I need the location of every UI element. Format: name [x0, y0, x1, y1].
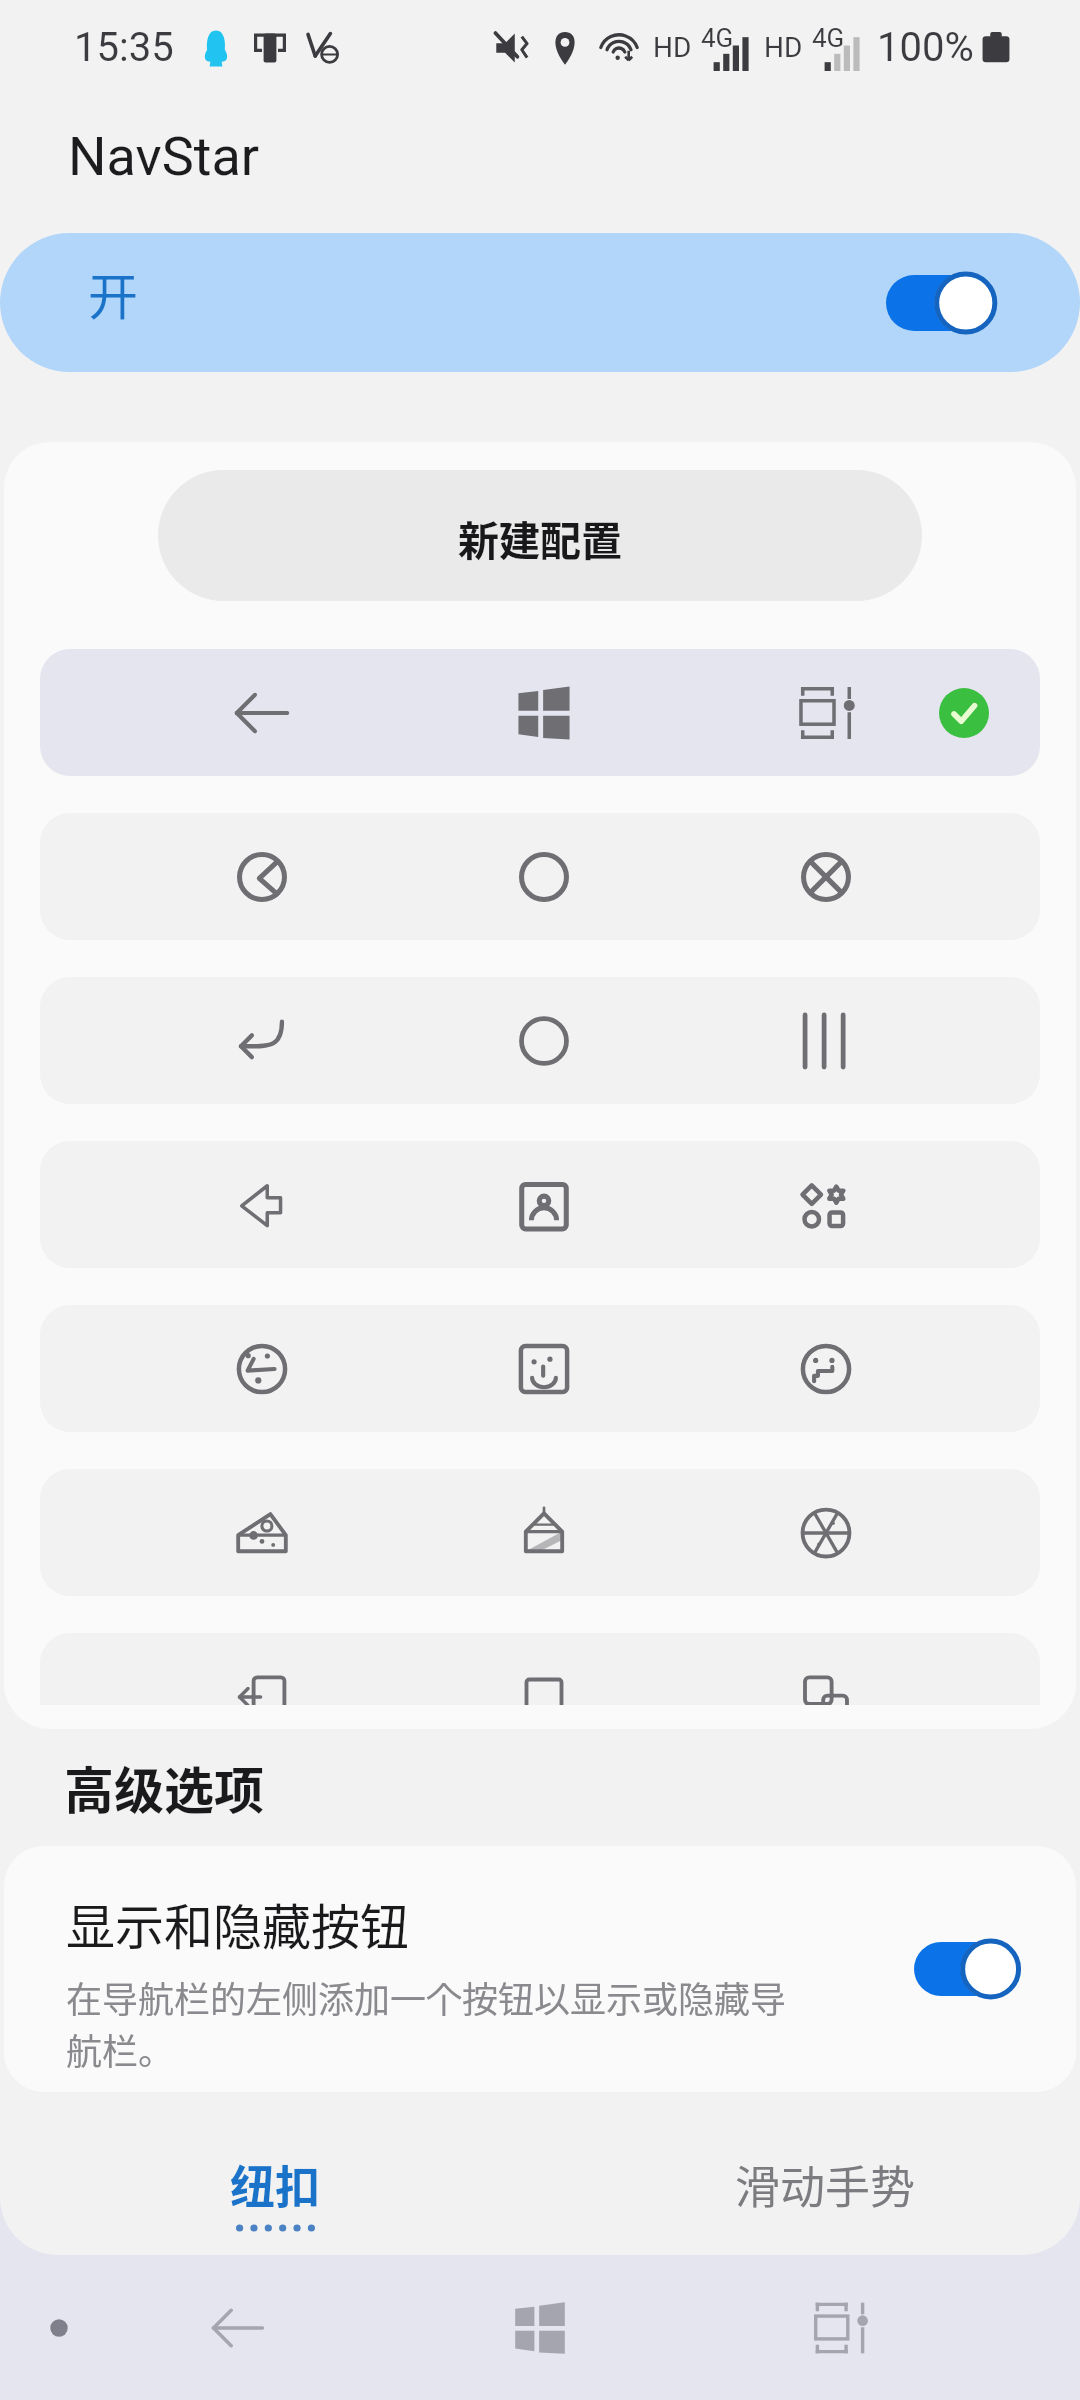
button[interactable]: 滑动手势: [660, 2092, 990, 2255]
staticText: 显示和隐藏按钮: [66, 1888, 410, 1959]
staticText: NavStar: [68, 125, 260, 188]
button[interactable]: 显示和隐藏按钮: [4, 1846, 1076, 2092]
staticText: 纽扣: [230, 2152, 321, 2217]
staticText: 在导航栏的左侧添加一个按钮以显示或隐藏导航栏。: [66, 1971, 796, 2075]
button[interactable]: Home: [468, 2256, 612, 2400]
button[interactable]: [40, 1141, 1040, 1268]
button[interactable]: [40, 977, 1040, 1104]
button[interactable]: [40, 1469, 1040, 1596]
staticText: 15:35: [74, 24, 174, 71]
button[interactable]: 纽扣: [130, 2092, 420, 2255]
staticText: 开: [88, 257, 138, 329]
button[interactable]: 开: [0, 233, 1080, 372]
button[interactable]: [40, 1633, 1040, 1705]
staticText: 新建配置: [458, 508, 622, 567]
button[interactable]: Back: [166, 2256, 310, 2400]
staticText: 4G: [812, 23, 845, 53]
button[interactable]: 新建配置: [158, 470, 922, 601]
button[interactable]: [40, 1305, 1040, 1432]
staticText: 滑动手势: [735, 2152, 916, 2217]
staticText: 100%: [877, 24, 974, 71]
button[interactable]: Recents: [768, 2256, 912, 2400]
button[interactable]: [40, 649, 1040, 776]
staticText: HD: [764, 31, 803, 64]
staticText: HD: [653, 31, 692, 64]
staticText: 高级选项: [64, 1751, 264, 1823]
staticText: 4G: [701, 23, 734, 53]
button[interactable]: [40, 813, 1040, 940]
